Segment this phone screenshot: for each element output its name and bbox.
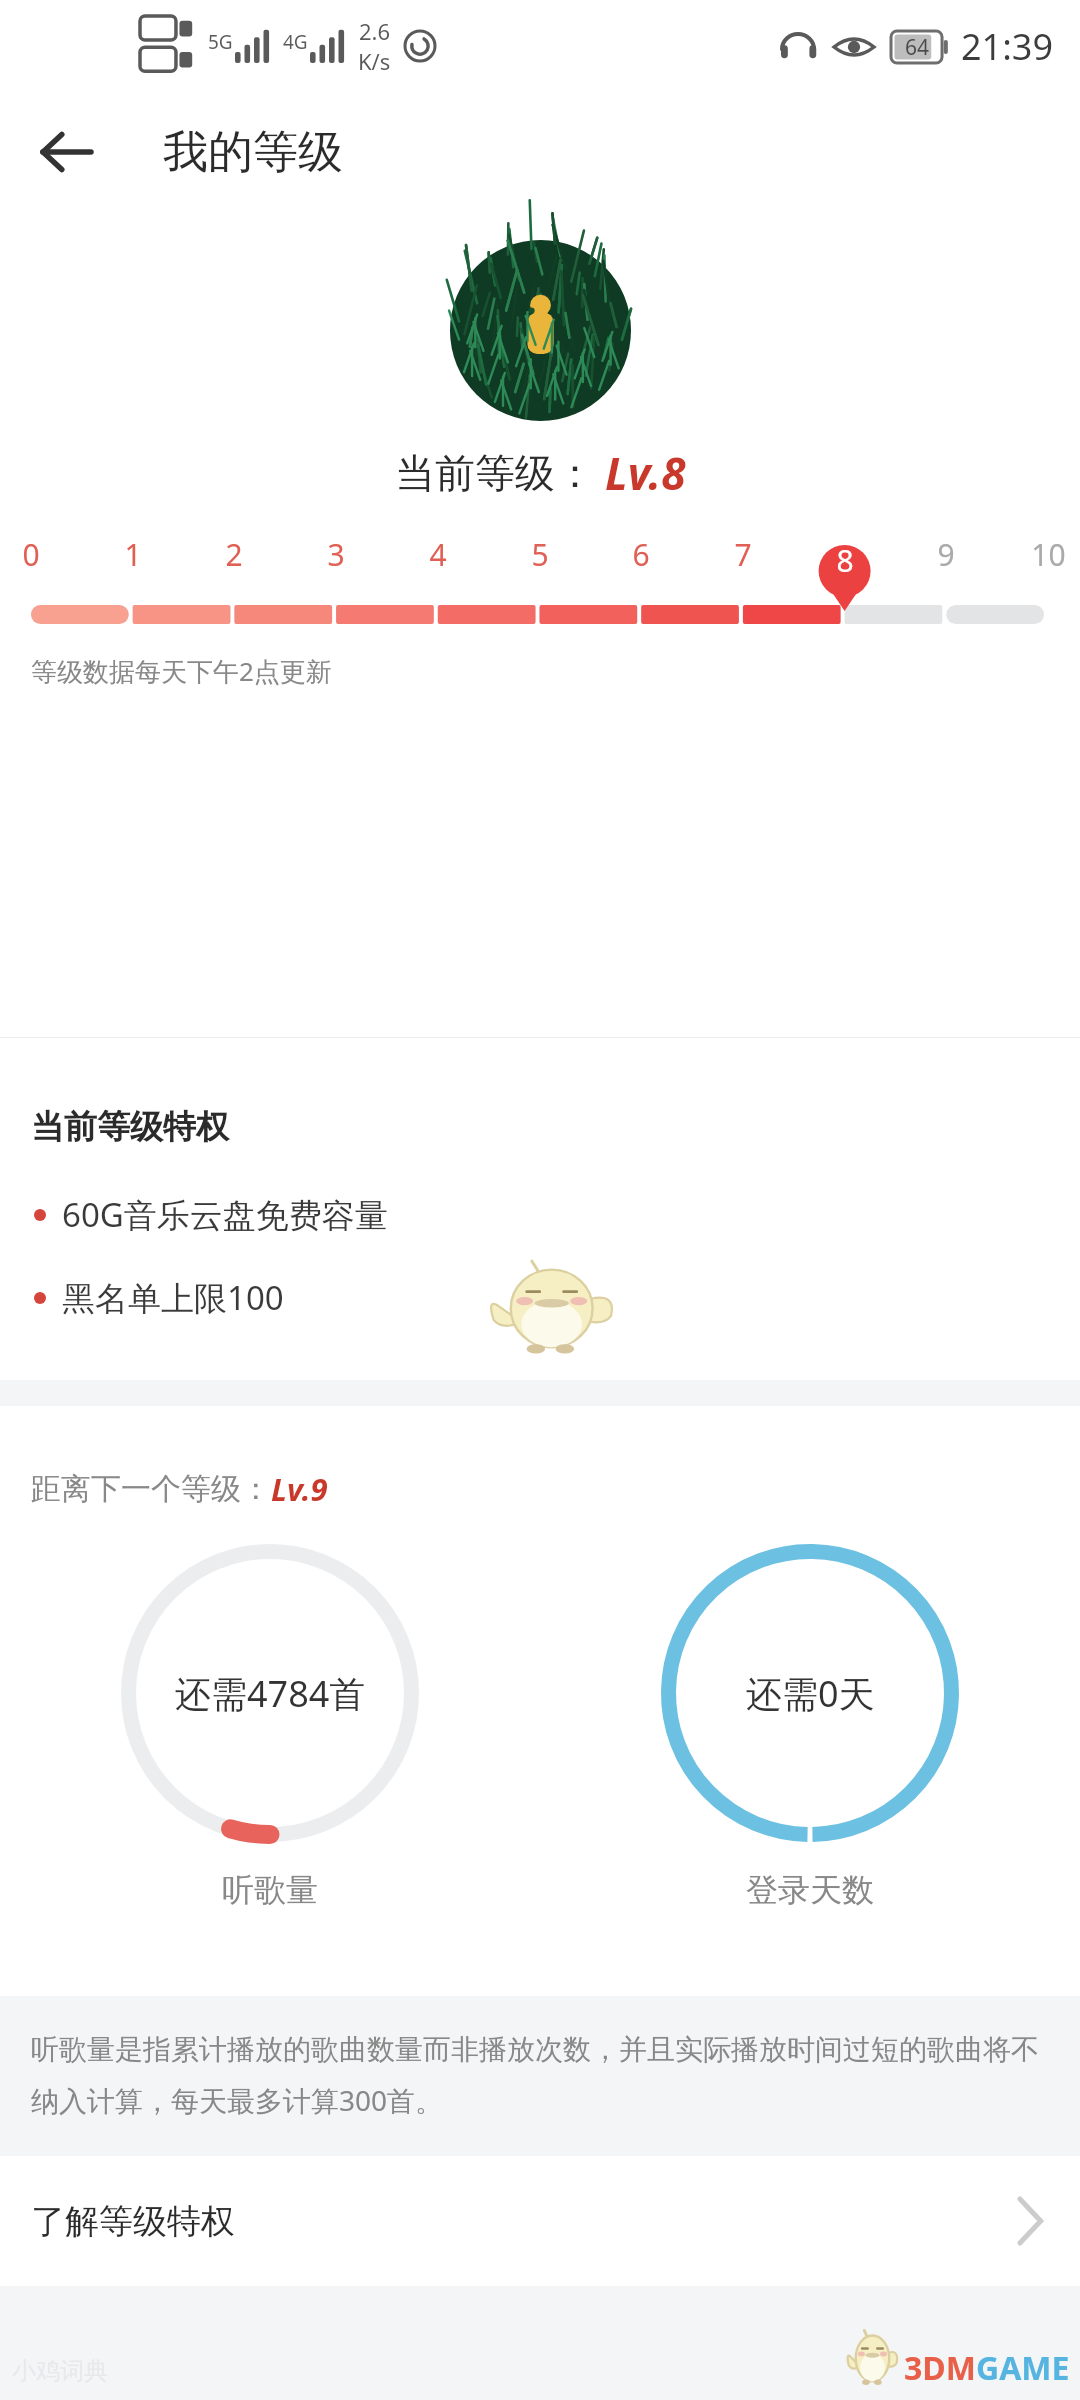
staticText: 0 xyxy=(22,534,40,575)
staticText: 当前等级特权 xyxy=(31,1106,229,1148)
staticText: Lv.8 xyxy=(605,443,686,503)
staticText: 当前等级： xyxy=(395,448,595,498)
staticText: 黑名单上限100 xyxy=(62,1275,284,1320)
staticText: 还需0天 xyxy=(746,1669,875,1718)
staticText: 9 xyxy=(937,534,955,575)
staticText: 我的等级 xyxy=(163,124,343,181)
staticText: 2 xyxy=(225,534,243,575)
staticText: 听歌量是指累计播放的歌曲数量而非播放次数，并且实际播放时间过短的歌曲将不纳入计算… xyxy=(31,2032,1049,2120)
staticText: 4 xyxy=(429,534,447,575)
staticText: 听歌量 xyxy=(222,1870,318,1910)
staticText: 60G音乐云盘免费容量 xyxy=(62,1192,388,1237)
staticText: 小鸡词典 xyxy=(12,2356,108,2386)
staticText: 64 xyxy=(905,33,930,62)
staticText: 21:39 xyxy=(961,22,1054,71)
staticText: K/s xyxy=(358,46,391,76)
staticText: 8 xyxy=(836,540,854,581)
staticText: 距离下一个等级： xyxy=(31,1470,271,1508)
staticText: 3DM xyxy=(904,2346,976,2390)
staticText: 2.6 xyxy=(359,16,391,46)
staticText: Lv.9 xyxy=(271,1468,328,1510)
staticText: 等级数据每天下午2点更新 xyxy=(31,653,332,689)
staticText: 10 xyxy=(1031,534,1066,575)
staticText: 登录天数 xyxy=(746,1870,874,1910)
staticText: 3 xyxy=(327,534,345,575)
staticText: 1 xyxy=(124,534,142,575)
staticText: 4G xyxy=(283,29,308,55)
button[interactable]: Back xyxy=(30,115,104,189)
staticText: GAME xyxy=(976,2346,1070,2390)
staticText: 了解等级特权 xyxy=(31,2200,235,2243)
button[interactable]: 了解等级特权 xyxy=(0,2156,1080,2286)
staticText: 还需4784首 xyxy=(175,1669,366,1718)
staticText: 5 xyxy=(531,534,549,575)
staticText: 5G xyxy=(208,29,233,55)
staticText: 7 xyxy=(734,534,752,575)
staticText: 6 xyxy=(632,534,650,575)
